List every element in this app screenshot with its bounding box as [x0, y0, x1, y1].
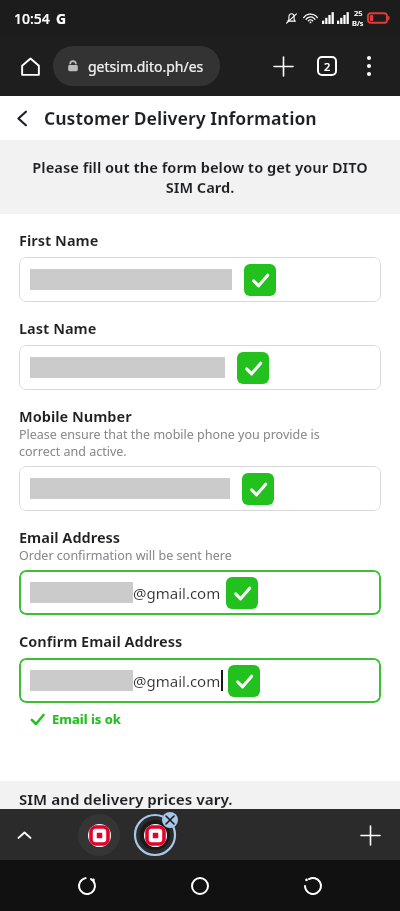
- button[interactable]: @gmail.com: [19, 658, 381, 703]
- staticText: B/s: [352, 18, 364, 28]
- staticText: 25: [354, 8, 363, 18]
- button[interactable]: Valid: [19, 257, 381, 302]
- button[interactable]: Back: [0, 96, 44, 140]
- button[interactable]: Valid: [237, 352, 269, 384]
- button[interactable]: New tab: [346, 811, 394, 859]
- button[interactable]: Valid: [244, 264, 276, 296]
- staticText: Mobile Number: [19, 406, 132, 426]
- staticText: Please ensure that the mobile phone you …: [19, 426, 320, 459]
- button[interactable]: DITO tab: [78, 814, 120, 856]
- button[interactable]: Home: [12, 48, 48, 84]
- staticText: SIM and delivery prices vary.: [19, 789, 233, 809]
- staticText: Customer Delivery Information: [44, 106, 317, 130]
- button[interactable]: Recent apps: [61, 860, 113, 911]
- staticText: Confirm Email Address: [19, 631, 183, 651]
- button[interactable]: More options: [350, 47, 388, 85]
- staticText: Please fill out the form below to get yo…: [32, 157, 368, 198]
- button[interactable]: New tab: [264, 47, 302, 85]
- button[interactable]: getsim.dito.ph/es: [53, 46, 220, 86]
- button[interactable]: Tabs: 2 open: [308, 47, 346, 85]
- staticText: Email is ok: [52, 710, 121, 728]
- button[interactable]: Valid: [242, 473, 274, 505]
- staticText: getsim.dito.ph/es: [88, 57, 204, 76]
- staticText: Email Address: [19, 527, 121, 547]
- staticText: 10:54: [14, 9, 50, 28]
- staticText: @gmail.com: [133, 583, 221, 603]
- button[interactable]: Expand: [0, 811, 48, 859]
- button[interactable]: Back: [287, 860, 339, 911]
- button[interactable]: Valid: [228, 665, 260, 697]
- button[interactable]: Valid: [19, 345, 381, 390]
- button[interactable]: Valid: [19, 466, 381, 511]
- button[interactable]: @gmail.com: [19, 570, 381, 615]
- staticText: Order confirmation will be sent here: [19, 547, 232, 564]
- staticText: Last Name: [19, 318, 97, 338]
- staticText: 2: [324, 59, 331, 74]
- staticText: First Name: [19, 230, 99, 250]
- staticText: G: [56, 9, 67, 28]
- button[interactable]: Active DITO tab, close: [131, 811, 179, 859]
- staticText: @gmail.com: [133, 671, 221, 691]
- button[interactable]: Valid: [226, 577, 258, 609]
- button[interactable]: Home: [174, 860, 226, 911]
